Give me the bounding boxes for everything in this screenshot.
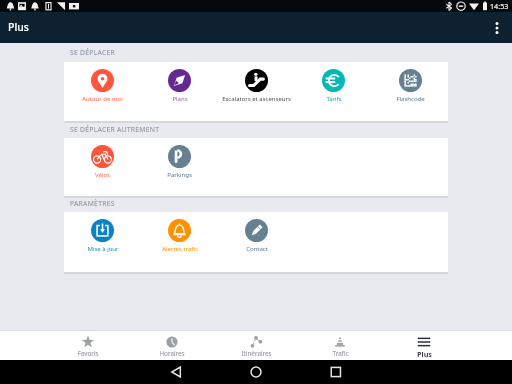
staticText: Plus — [8, 20, 29, 34]
button[interactable]: Parkings — [141, 138, 218, 196]
staticText: Escalators et ascenseurs — [222, 95, 291, 103]
button[interactable]: Plus — [382, 331, 466, 360]
button[interactable]: Horaires — [130, 331, 214, 360]
staticText: Alertes trafic — [162, 245, 198, 253]
staticText: Vélos — [95, 171, 110, 179]
button[interactable]: More options — [482, 12, 512, 43]
staticText: Flashcode — [396, 95, 425, 103]
staticText: Itinéraires — [241, 349, 272, 358]
staticText: Contact — [246, 245, 268, 253]
button[interactable]: Autour de moi — [64, 62, 141, 121]
button[interactable]: Escalators et ascenseurs — [218, 62, 295, 121]
staticText: Parkings — [167, 171, 192, 179]
staticText: Autour de moi — [82, 95, 123, 103]
button[interactable]: Plans — [141, 62, 218, 121]
staticText: SE DÉPLACER — [70, 48, 115, 57]
button[interactable]: Flashcode — [372, 62, 448, 121]
staticText: Favoris — [77, 349, 99, 358]
button[interactable]: Alertes trafic — [141, 212, 218, 272]
staticText: Horaires — [159, 349, 185, 358]
button[interactable]: Mise à jour — [64, 212, 141, 272]
staticText: PARAMÈTRES — [70, 199, 115, 208]
button[interactable]: Vélos — [64, 138, 141, 196]
staticText: Trafic — [332, 349, 349, 358]
staticText: Tarifs — [326, 95, 342, 103]
staticText: Plus — [417, 349, 432, 359]
staticText: 14:53 — [490, 1, 509, 11]
staticText: Plans — [172, 95, 188, 103]
button[interactable]: Itinéraires — [214, 331, 298, 360]
staticText: SE DÉPLACER AUTREMENT — [70, 125, 160, 134]
button[interactable]: Contact — [218, 212, 295, 272]
button[interactable]: Favoris — [46, 331, 130, 360]
button[interactable]: Tarifs — [295, 62, 372, 121]
button[interactable]: Trafic — [298, 331, 382, 360]
staticText: Mise à jour — [87, 245, 119, 253]
